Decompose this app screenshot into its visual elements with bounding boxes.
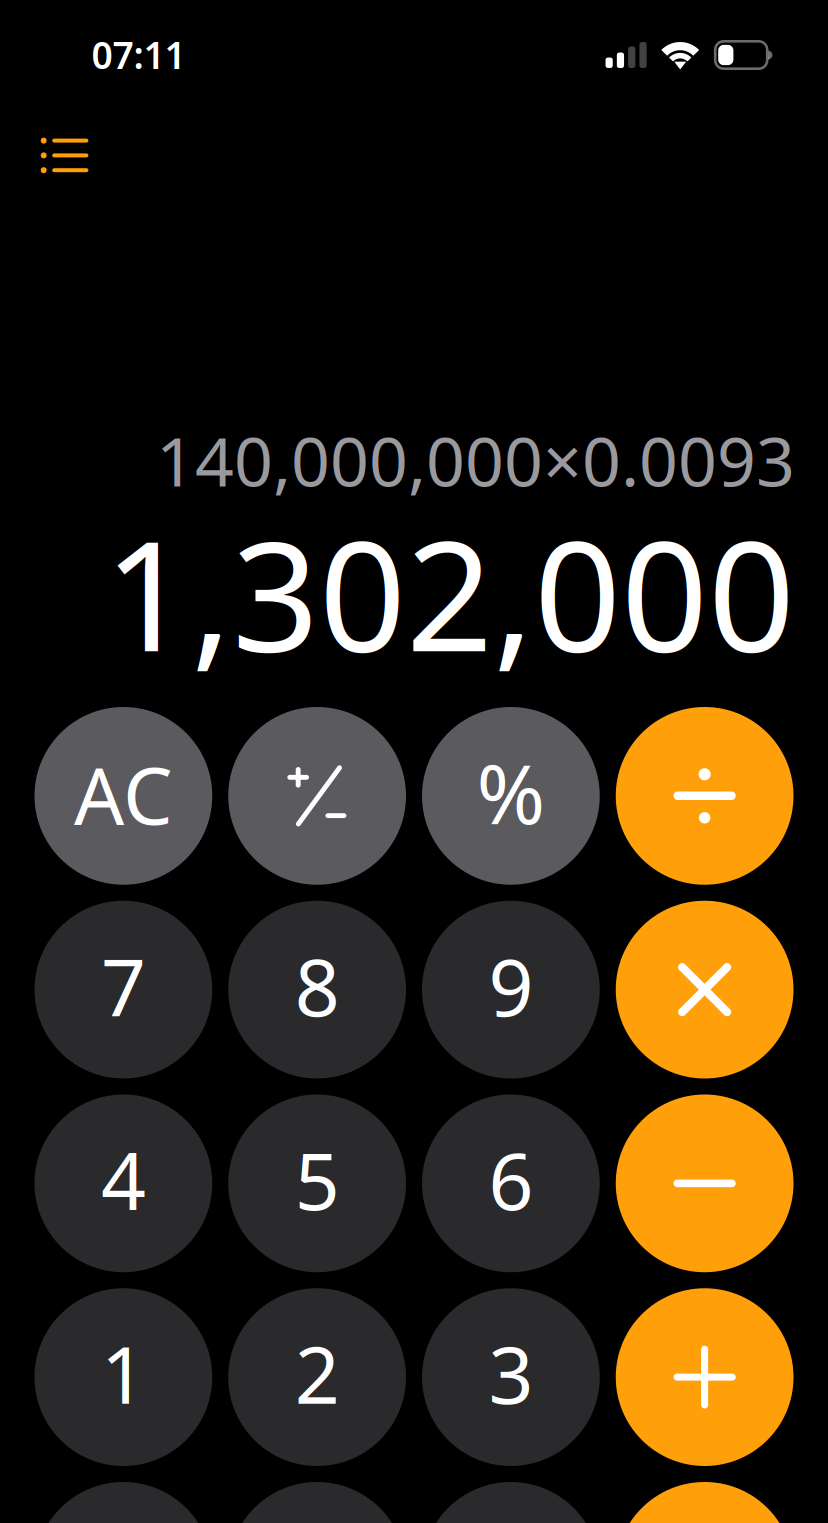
button[interactable]: Divide — [616, 707, 794, 885]
staticText: 9 — [488, 933, 533, 1038]
button[interactable]: 8 — [228, 901, 406, 1079]
staticText: % — [476, 737, 545, 847]
button[interactable]: 1 — [34, 1288, 212, 1466]
button[interactable]: Decimal point — [228, 1482, 406, 1523]
button[interactable]: 6 — [422, 1094, 600, 1272]
staticText: 8 — [295, 933, 340, 1038]
staticText: 4 — [101, 1127, 146, 1232]
button[interactable]: 9 — [422, 901, 600, 1079]
staticText: 1,302,000 — [104, 491, 795, 693]
button[interactable]: 3 — [422, 1288, 600, 1466]
button[interactable]: All clear — [34, 707, 212, 885]
staticText: 7 — [101, 933, 146, 1038]
button[interactable]: Equals — [616, 1482, 794, 1523]
staticText: 3 — [488, 1321, 533, 1425]
button[interactable]: History — [0, 112, 121, 199]
button[interactable]: 5 — [228, 1094, 406, 1272]
button[interactable]: 4 — [34, 1094, 212, 1272]
staticText: 140,000,000×0.0093 — [156, 415, 795, 505]
staticText: 6 — [488, 1127, 533, 1232]
staticText: AC — [74, 742, 173, 846]
staticText: 5 — [295, 1127, 340, 1232]
button[interactable]: 2 — [228, 1288, 406, 1466]
button[interactable]: Delete — [422, 1482, 600, 1523]
staticText: 1 — [101, 1321, 146, 1425]
button[interactable]: 7 — [34, 901, 212, 1079]
staticText: 2 — [295, 1321, 340, 1425]
button[interactable]: Plus minus — [228, 707, 406, 885]
button[interactable]: Minus — [616, 1094, 794, 1272]
button[interactable]: Plus — [616, 1288, 794, 1466]
staticText: 07:11 — [91, 30, 185, 79]
button[interactable]: 0 — [34, 1482, 212, 1523]
button[interactable]: Percent — [422, 707, 600, 885]
button[interactable]: Multiply — [616, 901, 794, 1079]
